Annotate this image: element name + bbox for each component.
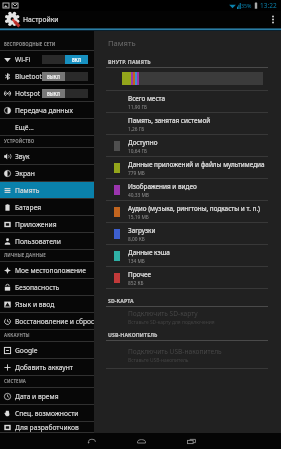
staticText: Прочее bbox=[128, 270, 152, 279]
staticText: Доступно bbox=[128, 138, 158, 147]
button[interactable]: Мое местоположение bbox=[0, 262, 94, 279]
staticText: ВКЛ bbox=[72, 57, 81, 63]
staticText: Аудио (музыка, рингтоны, подкасты и т. п… bbox=[128, 204, 261, 213]
staticText: 40,33 MB bbox=[128, 192, 149, 199]
button[interactable]: Данные кэша bbox=[94, 245, 281, 267]
button[interactable]: Для разработчиков bbox=[0, 422, 94, 433]
staticText: Изображения и видео bbox=[128, 182, 197, 191]
staticText: Приложения bbox=[15, 220, 57, 229]
button[interactable]: Память bbox=[0, 182, 94, 199]
staticText: USB-НАКОПИТЕЛЬ bbox=[108, 331, 158, 338]
staticText: ЛИЧНЫЕ ДАННЫЕ bbox=[4, 252, 46, 258]
staticText: Подключить SD-карту bbox=[128, 309, 198, 318]
staticText: Вставьте SD-карту для подключения bbox=[128, 319, 215, 326]
button[interactable]: Загрузки bbox=[94, 223, 281, 245]
staticText: SD-КАРТА bbox=[108, 297, 134, 304]
button[interactable]: Bluetooth bbox=[0, 68, 94, 85]
staticText: 8,00 КБ bbox=[128, 236, 145, 243]
staticText: 15,19 МБ bbox=[128, 214, 149, 221]
staticText: АККАУНТЫ bbox=[4, 332, 30, 338]
button[interactable]: Back bbox=[74, 433, 108, 449]
staticText: Добавить аккаунт bbox=[15, 363, 73, 372]
button[interactable]: Всего места bbox=[94, 91, 281, 113]
staticText: Wi-Fi bbox=[15, 55, 31, 64]
staticText: Данные кэша bbox=[128, 248, 170, 257]
staticText: Загрузки bbox=[128, 226, 156, 235]
staticText: СИСТЕМА bbox=[4, 378, 27, 384]
button[interactable]: More options bbox=[265, 11, 281, 28]
staticText: Язык и ввод bbox=[15, 300, 55, 309]
button[interactable]: Home bbox=[124, 433, 158, 449]
staticText: 10,64 ГБ bbox=[128, 148, 147, 155]
staticText: Hotspot bbox=[15, 89, 41, 98]
staticText: ВЫКЛ bbox=[47, 91, 60, 97]
button[interactable]: Данные приложений и файлы мультимедиа bbox=[94, 157, 281, 179]
button[interactable]: Дата и время bbox=[0, 388, 94, 405]
staticText: Данные приложений и файлы мультимедиа bbox=[128, 160, 265, 169]
staticText: Google bbox=[15, 346, 38, 355]
button[interactable]: Recent apps bbox=[174, 433, 208, 449]
staticText: Вставьте USB-накопитель bbox=[128, 357, 189, 364]
button[interactable]: Безопасность bbox=[0, 279, 94, 296]
button[interactable]: Звук bbox=[0, 148, 94, 165]
staticText: 11,90 ГБ bbox=[128, 104, 147, 111]
button[interactable]: Экран bbox=[0, 165, 94, 182]
staticText: Звук bbox=[15, 152, 30, 161]
button[interactable]: Спец. возможности bbox=[0, 405, 94, 422]
staticText: Для разработчиков bbox=[15, 423, 79, 432]
button[interactable]: Изображения и видео bbox=[94, 179, 281, 201]
button[interactable]: Восстановление и сброс bbox=[0, 313, 94, 330]
button[interactable]: Память, занятая системой bbox=[94, 113, 281, 135]
staticText: Экран bbox=[15, 169, 35, 178]
button[interactable]: Аудио (музыка, рингтоны, подкасты и т. п… bbox=[94, 201, 281, 223]
staticText: Передача данных bbox=[15, 106, 73, 115]
staticText: Всего места bbox=[128, 94, 166, 103]
button[interactable]: Язык и ввод bbox=[0, 296, 94, 313]
button[interactable]: Google bbox=[0, 342, 94, 359]
staticText: Спец. возможности bbox=[15, 409, 79, 418]
staticText: Память, занятая системой bbox=[128, 116, 211, 125]
staticText: ВЫКЛ bbox=[47, 74, 60, 80]
staticText: Безопасность bbox=[15, 283, 60, 292]
staticText: ВНУТР. ПАМЯТЬ bbox=[108, 58, 151, 65]
button[interactable]: Доступно bbox=[94, 135, 281, 157]
button[interactable]: Батарея bbox=[0, 199, 94, 216]
staticText: Дата и время bbox=[15, 392, 59, 401]
button[interactable]: Прочее bbox=[94, 267, 281, 289]
staticText: Память bbox=[15, 186, 40, 195]
staticText: 1,26 ГБ bbox=[128, 126, 145, 133]
staticText: Ещё... bbox=[15, 123, 34, 132]
staticText: Bluetooth bbox=[15, 72, 47, 81]
button[interactable]: Hotspot bbox=[0, 85, 94, 102]
staticText: 35% bbox=[241, 2, 252, 9]
button[interactable]: Приложения bbox=[0, 216, 94, 233]
staticText: БЕСПРОВОДНЫЕ СЕТИ bbox=[4, 41, 56, 47]
staticText: Пользователи bbox=[15, 237, 61, 246]
staticText: Батарея bbox=[15, 203, 42, 212]
staticText: Восстановление и сброс bbox=[15, 317, 94, 326]
staticText: 779 МБ bbox=[128, 170, 145, 177]
staticText: 852 КБ bbox=[128, 280, 144, 287]
button[interactable]: Пользователи bbox=[0, 233, 94, 250]
staticText: Память bbox=[108, 38, 136, 48]
button[interactable]: Добавить аккаунт bbox=[0, 359, 94, 376]
staticText: Настройки bbox=[23, 15, 59, 24]
staticText: УСТРОЙСТВО bbox=[4, 138, 35, 144]
button[interactable]: Передача данных bbox=[0, 102, 94, 119]
staticText: Мое местоположение bbox=[15, 266, 86, 275]
staticText: Подключить USB-накопитель bbox=[128, 347, 222, 356]
staticText: 13:22 bbox=[260, 1, 277, 10]
staticText: 134 МБ bbox=[128, 258, 145, 265]
button[interactable]: Ещё... bbox=[0, 119, 94, 136]
button[interactable]: Wi-Fi bbox=[0, 51, 94, 68]
